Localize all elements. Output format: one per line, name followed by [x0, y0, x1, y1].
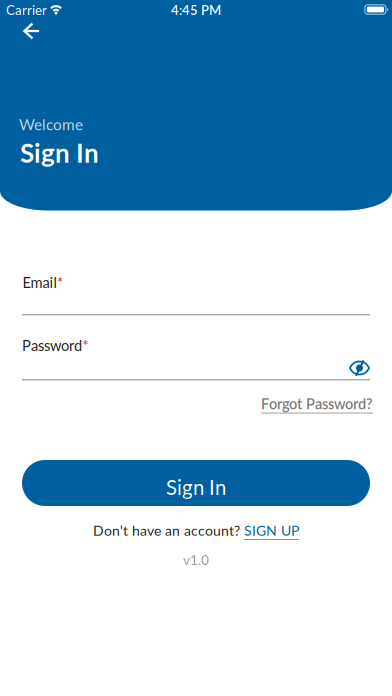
- staticText: v1.0: [183, 551, 209, 568]
- staticText: SIGN UP: [244, 522, 299, 539]
- staticText: Password: [22, 336, 82, 354]
- button[interactable]: Sign In: [22, 460, 370, 506]
- staticText: Forgot Password?: [261, 395, 373, 412]
- staticText: *: [82, 336, 88, 354]
- button[interactable]: Forgot Password?: [261, 395, 373, 412]
- staticText: 4:45 PM: [171, 2, 221, 18]
- staticText: *: [57, 273, 63, 291]
- staticText: Email: [22, 273, 56, 291]
- button[interactable]: Back: [14, 14, 48, 48]
- button[interactable]: SIGN UP: [244, 522, 299, 539]
- staticText: Don't have an account?: [93, 522, 240, 539]
- staticText: Sign In: [20, 137, 99, 168]
- staticText: Welcome: [19, 115, 83, 133]
- staticText: Sign In: [166, 475, 226, 499]
- button[interactable]: Show password: [346, 357, 373, 379]
- staticText: Carrier: [6, 2, 47, 18]
